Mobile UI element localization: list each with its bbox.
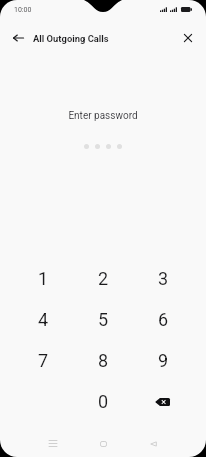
staticText: 10:00 bbox=[14, 6, 32, 14]
button[interactable]: Back bbox=[6, 26, 30, 50]
staticText: 9 bbox=[158, 350, 169, 371]
button[interactable]: 7 bbox=[13, 340, 73, 381]
button[interactable]: 8 bbox=[73, 340, 133, 381]
staticText: 7 bbox=[38, 350, 49, 371]
button[interactable]: Recents bbox=[28, 430, 78, 457]
staticText: All Outgoing Calls bbox=[33, 33, 109, 44]
staticText: 3 bbox=[158, 268, 169, 289]
button[interactable]: 4 bbox=[13, 299, 73, 340]
button[interactable]: 9 bbox=[133, 340, 193, 381]
other: Delete bbox=[155, 398, 170, 406]
button[interactable]: 3 bbox=[133, 258, 193, 299]
staticText: 1 bbox=[38, 268, 49, 289]
staticText: 5 bbox=[98, 309, 109, 330]
button[interactable]: Delete bbox=[133, 381, 193, 422]
staticText: 0 bbox=[98, 391, 109, 412]
staticText: Enter password bbox=[0, 110, 206, 122]
button[interactable]: Back bbox=[128, 430, 178, 457]
button[interactable]: Close bbox=[176, 26, 200, 50]
button[interactable]: 1 bbox=[13, 258, 73, 299]
button[interactable]: 5 bbox=[73, 299, 133, 340]
button[interactable]: Home bbox=[78, 430, 128, 457]
button[interactable]: 0 bbox=[73, 381, 133, 422]
staticText: 6 bbox=[158, 309, 169, 330]
staticText: 4 bbox=[38, 309, 49, 330]
staticText: 2 bbox=[98, 268, 109, 289]
staticText: 8 bbox=[98, 350, 109, 371]
button[interactable]: 6 bbox=[133, 299, 193, 340]
button[interactable]: 2 bbox=[73, 258, 133, 299]
